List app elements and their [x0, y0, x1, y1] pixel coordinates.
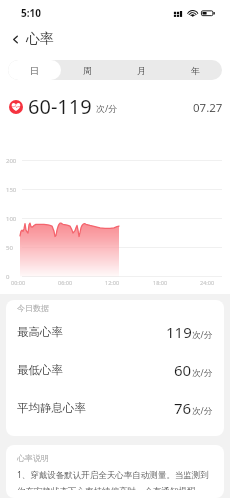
staticText: 次/分	[192, 367, 213, 379]
staticText: 119	[166, 322, 192, 342]
button[interactable]: 日	[8, 60, 61, 80]
staticText: 60-119	[28, 93, 92, 120]
staticText: 5:10	[21, 6, 41, 20]
button[interactable]: 最低心率	[6, 351, 224, 389]
button[interactable]: 周	[61, 60, 114, 80]
staticText: 12:00	[105, 279, 120, 286]
staticText: 76	[174, 398, 192, 418]
staticText: 24:00	[200, 279, 215, 286]
staticText: 50	[6, 244, 13, 252]
staticText: 18:00	[153, 279, 168, 286]
button[interactable]: 平均静息心率	[6, 389, 224, 427]
staticText: 年	[191, 65, 200, 76]
staticText: 150	[6, 186, 17, 194]
staticText: 最低心率	[17, 363, 63, 377]
staticText: 0	[6, 273, 10, 281]
staticText: 次/分	[192, 329, 213, 341]
button[interactable]: 年	[168, 60, 222, 80]
staticText: 06:00	[58, 279, 73, 286]
staticText: 07.27	[193, 100, 223, 116]
staticText: 60	[174, 360, 192, 380]
button[interactable]: 月	[114, 60, 168, 80]
staticText: 次/分	[96, 102, 118, 114]
staticText: 最高心率	[17, 325, 63, 339]
staticText: 平均静息心率	[17, 401, 86, 415]
staticText: 200	[6, 157, 17, 165]
staticText: 周	[83, 65, 92, 76]
staticText: 1、穿戴设备默认开启全天心率自动测量。当监测到你在安静状态下心率持续偏高时，会有…	[17, 469, 213, 490]
staticText: 今日数据	[17, 303, 49, 313]
staticText: 次/分	[192, 405, 213, 417]
staticText: 心率	[26, 30, 54, 48]
staticText: 00:00	[11, 279, 26, 286]
staticText: 日	[30, 65, 39, 76]
button[interactable]: Back	[7, 31, 23, 47]
staticText: 100	[6, 215, 17, 223]
staticText: 月	[137, 65, 146, 76]
staticText: 心率说明	[17, 453, 49, 463]
button[interactable]: 最高心率	[6, 313, 224, 351]
